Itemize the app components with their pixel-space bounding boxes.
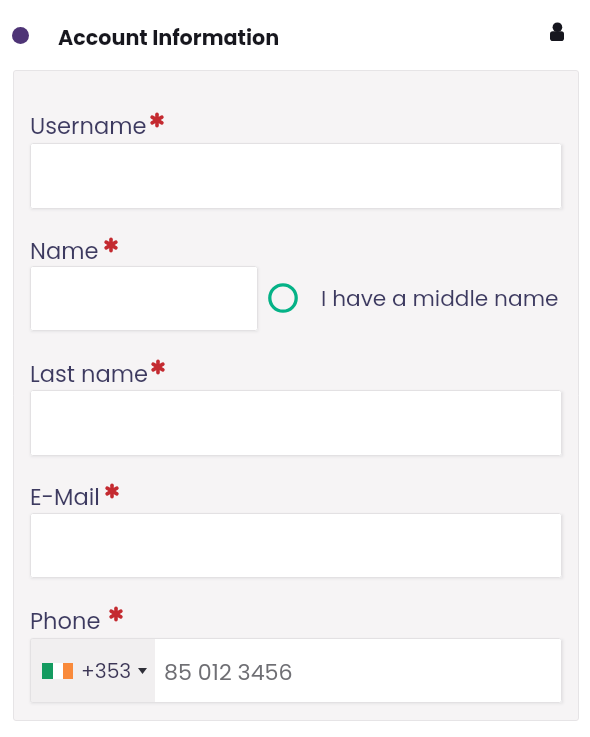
staticText: Username	[30, 110, 147, 142]
button[interactable]	[30, 390, 562, 456]
button[interactable]	[30, 143, 562, 209]
staticText: +353	[81, 657, 132, 685]
staticText: I have a middle name	[321, 283, 559, 313]
button[interactable]: Account	[535, 10, 579, 54]
button[interactable]	[30, 513, 562, 578]
button[interactable]: I have a middle name	[268, 283, 559, 313]
staticText: Name	[30, 235, 99, 267]
staticText: E-Mail	[30, 481, 100, 513]
staticText: Last name	[30, 358, 149, 390]
button[interactable]: Step indicator	[12, 27, 29, 44]
button[interactable]: 85 012 3456	[155, 638, 561, 703]
staticText: 85 012 3456	[164, 657, 293, 688]
staticText: Phone	[30, 605, 101, 637]
button[interactable]	[30, 266, 258, 331]
button[interactable]: Select country code	[30, 638, 155, 703]
button[interactable]: Account Information	[58, 23, 280, 52]
